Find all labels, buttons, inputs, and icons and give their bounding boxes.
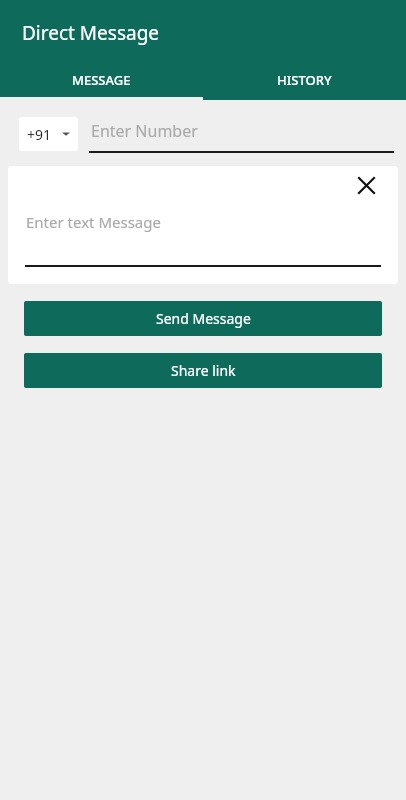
button[interactable]: Send Message (24, 301, 382, 336)
button[interactable]: Share link (24, 353, 382, 388)
staticText: Enter text Message (26, 212, 161, 232)
staticText: HISTORY (277, 71, 332, 89)
button[interactable]: HISTORY (203, 66, 406, 100)
button[interactable]: Enter Number (89, 115, 394, 153)
staticText: Share link (171, 361, 236, 380)
button[interactable]: MESSAGE (0, 66, 203, 100)
staticText: +91 (27, 125, 52, 144)
staticText: Send Message (156, 309, 251, 328)
staticText: Direct Message (22, 20, 160, 46)
staticText: Enter Number (91, 120, 198, 142)
button[interactable]: Clear message (352, 171, 380, 199)
button[interactable]: +91 (19, 117, 78, 151)
staticText: MESSAGE (72, 71, 131, 89)
